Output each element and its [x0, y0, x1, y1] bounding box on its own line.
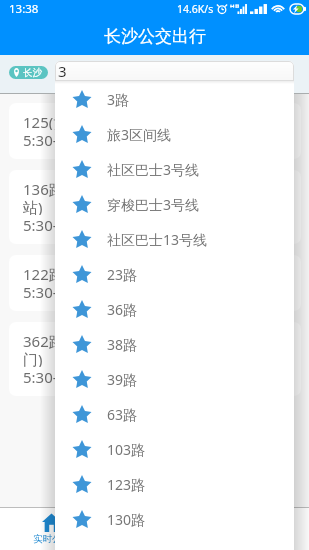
staticText: 门) [23, 349, 43, 367]
staticText: 13:38 [9, 1, 39, 17]
staticText: 社区巴士13号线 [107, 230, 208, 249]
button[interactable]: 362路(望城坡-黄兴南路 [9, 322, 301, 396]
staticText: 23路 [107, 265, 138, 284]
button[interactable]: 103路 [55, 432, 294, 467]
staticText: 社区巴士3号线 [107, 160, 200, 179]
staticText: 5:30-20:30 [23, 367, 96, 385]
staticText: 长沙公交出行 [104, 26, 206, 47]
button[interactable]: 123路 [55, 467, 294, 502]
button[interactable]: 136路(长沙火车南 [9, 170, 301, 244]
button[interactable]: 实时公交 [0, 508, 103, 550]
button[interactable]: 39路 [55, 362, 294, 397]
button[interactable]: 穿梭巴士3号线 [55, 187, 294, 222]
staticText: 5:30-21:30 [23, 215, 96, 233]
button[interactable]: 社区巴士13号线 [55, 222, 294, 257]
staticText: 3路 [107, 90, 130, 109]
staticText: 125(黄兴路步行街- [23, 112, 149, 130]
staticText: 38路 [107, 335, 138, 354]
staticText: 3 [58, 61, 67, 81]
button[interactable]: 换乘查询 [103, 508, 206, 550]
staticText: 5:30-21:00 [23, 282, 96, 300]
staticText: 5:30-21:00 [23, 130, 96, 148]
staticText: 穿梭巴士3号线 [107, 195, 200, 214]
staticText: 旅3区间线 [107, 125, 172, 144]
staticText: 123路 [107, 475, 146, 494]
staticText: 长沙 [23, 67, 42, 79]
button[interactable]: 122路(汽车西站- [9, 255, 301, 311]
staticText: 130路 [107, 510, 146, 529]
staticText: 136路(长沙火车南 [23, 179, 144, 197]
button[interactable]: 36路 [55, 292, 294, 327]
button[interactable]: Search bus line [55, 61, 294, 81]
button[interactable]: 38路 [55, 327, 294, 362]
staticText: 362路(望城坡-黄兴南路 [23, 331, 179, 349]
button[interactable]: 社区巴士3号线 [55, 152, 294, 187]
staticText: 站) [23, 197, 43, 215]
button[interactable]: 3路 [55, 82, 294, 117]
button[interactable]: 125(黄兴路步行街- [9, 103, 301, 159]
button[interactable]: Change city [9, 66, 48, 79]
staticText: 103路 [107, 440, 146, 459]
button[interactable]: 63路 [55, 397, 294, 432]
staticText: 36路 [107, 300, 138, 319]
button[interactable]: 23路 [55, 257, 294, 292]
staticText: 63路 [107, 405, 138, 424]
staticText: 122路(汽车西站- [23, 264, 134, 282]
button[interactable]: 旅3区间线 [55, 117, 294, 152]
staticText: 实时公交 [33, 533, 71, 545]
staticText: 14.6K/s [177, 2, 214, 16]
button[interactable]: 130路 [55, 502, 294, 537]
button[interactable]: 我的 [206, 508, 309, 550]
staticText: 39路 [107, 370, 138, 389]
